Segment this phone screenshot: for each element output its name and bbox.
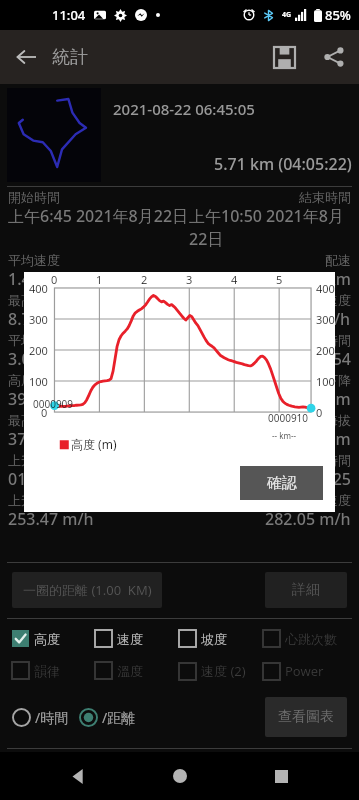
button[interactable]: 心跳次數 [263, 628, 347, 649]
staticText: -- km-- [272, 430, 297, 441]
staticText: 400 [29, 281, 48, 296]
button[interactable]: Save [259, 32, 309, 82]
button[interactable]: 溫度 [95, 660, 179, 681]
staticText: 01:25 [310, 468, 351, 490]
staticText: 上午10:50 2021年8月22日 [189, 205, 351, 250]
button[interactable]: 韻律 [12, 660, 95, 681]
staticText: 2021-08-22 06:45:05 [113, 99, 255, 119]
staticText: 11:04 [52, 6, 86, 24]
staticText: 396 m [8, 388, 55, 410]
staticText: 1 [96, 272, 103, 287]
staticText: 402 m [304, 388, 351, 410]
staticText: 0000909 [33, 397, 74, 411]
staticText: 253.47 m/h [8, 508, 94, 530]
staticText: 377 m [8, 428, 55, 450]
button[interactable]: Back [54, 752, 102, 800]
staticText: 速度 (2) [201, 662, 246, 680]
staticText: 上升時間 [8, 452, 60, 468]
staticText: 平均速度 [8, 252, 60, 268]
staticText: 300 [316, 312, 335, 327]
staticText: 心跳次數 [285, 631, 337, 647]
button[interactable]: 坡度 [179, 628, 263, 649]
staticText: 400 [316, 281, 335, 296]
button[interactable]: Recent apps [257, 752, 305, 800]
staticText: 坡度 [201, 631, 227, 647]
staticText: 282.05 m/h [265, 508, 351, 530]
staticText: 平均坡度 [8, 332, 60, 348]
staticText: 高度 [34, 631, 60, 647]
button[interactable]: Back [0, 31, 52, 83]
staticText: 0000910 [268, 411, 309, 425]
staticText: 0 [41, 405, 48, 420]
button[interactable]: 詳細 [265, 572, 347, 608]
staticText: 移動時間 [299, 332, 351, 348]
button[interactable]: 高度 [12, 628, 95, 649]
staticText: 結束時間 [299, 189, 351, 205]
button[interactable]: 查看圖表 [265, 697, 347, 737]
staticText: 21 m [313, 428, 351, 450]
staticText: /時間 [35, 708, 69, 727]
staticText: 查看圖表 [278, 708, 334, 726]
staticText: 下降時間 [299, 452, 351, 468]
staticText: 上午6:45 2021年8月22日 [8, 205, 189, 227]
staticText: 韻律 [34, 663, 60, 679]
staticText: 配速 [325, 252, 351, 268]
staticText: 移動速度 [299, 292, 351, 308]
staticText: 高度 (m) [71, 436, 117, 452]
button[interactable]: Power [263, 660, 347, 682]
staticText: 速度 [117, 631, 143, 647]
staticText: 上升速度 [8, 492, 60, 508]
staticText: 2 [141, 272, 148, 287]
button[interactable]: /距離 [79, 704, 136, 731]
staticText: 溫度 [117, 663, 143, 679]
staticText: Power [285, 662, 324, 680]
staticText: 300 [29, 312, 48, 327]
staticText: 1.5 km/h [283, 308, 351, 330]
button[interactable]: 速度 [95, 628, 179, 649]
staticText: 0 [316, 405, 323, 420]
staticText: 3.04 % [8, 348, 58, 370]
staticText: 200 [316, 343, 335, 358]
staticText: 42:59 min/km [246, 268, 351, 290]
staticText: 詳細 [292, 581, 320, 599]
staticText: 高度下降 [299, 372, 351, 388]
staticText: 高度上升 [8, 372, 60, 388]
staticText: 一圈的距離 (1.00 KM) [23, 581, 152, 599]
staticText: 開始時間 [8, 189, 60, 205]
staticText: 8.7 km/h [8, 308, 76, 330]
button[interactable]: 速度 (2) [179, 660, 263, 682]
staticText: 0 [51, 272, 58, 287]
staticText: 統計 [52, 46, 88, 69]
staticText: 200 [29, 343, 48, 358]
staticText: 85% [325, 6, 351, 24]
staticText: 1.4 km/h [8, 268, 76, 290]
staticText: 4G [282, 10, 292, 20]
staticText: 最低海拔 [299, 412, 351, 428]
button[interactable]: Share [309, 32, 359, 82]
staticText: 3 [186, 272, 193, 287]
staticText: 100 [29, 374, 48, 389]
staticText: 最高速度 [8, 292, 60, 308]
staticText: 03:54 [310, 348, 351, 370]
button[interactable]: 一圈的距離 (1.00 KM) [12, 572, 162, 608]
staticText: /距離 [102, 708, 136, 727]
staticText: 5 [276, 272, 283, 287]
staticText: 100 [316, 374, 335, 389]
staticText: 4 [231, 272, 238, 287]
staticText: 下降速度 [299, 492, 351, 508]
button[interactable]: 確認 [240, 466, 323, 500]
staticText: 最高海拔 [8, 412, 60, 428]
button[interactable]: Home [156, 752, 204, 800]
staticText: 01:33 [8, 468, 49, 490]
staticText: 確認 [267, 474, 297, 493]
staticText: 5.71 km (04:05:22) [214, 153, 352, 175]
button[interactable]: /時間 [12, 704, 69, 731]
